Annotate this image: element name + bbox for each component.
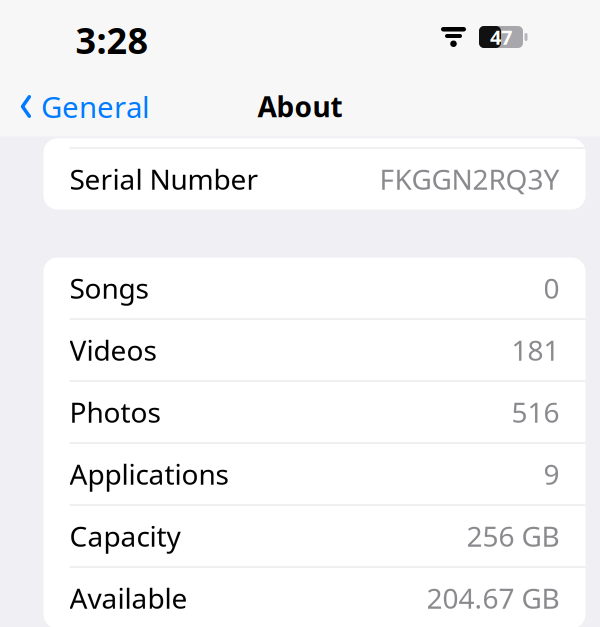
staticText: General (41, 87, 150, 126)
staticText: About (257, 88, 342, 125)
button[interactable]: Applications (43, 443, 585, 504)
staticText: 0 (543, 269, 559, 307)
staticText: 3:28 (75, 16, 148, 64)
staticText: Applications (69, 455, 228, 493)
staticText: Capacity (69, 517, 180, 555)
staticText: 204.67 GB (426, 579, 559, 617)
button[interactable]: Photos (43, 381, 585, 442)
staticText: Available (69, 579, 187, 617)
staticText: 516 (511, 393, 559, 431)
staticText: 47 (490, 24, 512, 50)
staticText: FKGGN2RQ3Y (379, 160, 559, 198)
button[interactable]: Songs (43, 257, 585, 318)
staticText: 256 GB (466, 517, 559, 555)
button[interactable]: Capacity (43, 505, 585, 566)
staticText: Photos (69, 393, 160, 431)
staticText: Videos (69, 331, 156, 369)
button[interactable]: Serial Number (43, 148, 585, 209)
staticText: 181 (511, 331, 559, 369)
button[interactable]: Videos (43, 319, 585, 380)
staticText: Serial Number (69, 160, 258, 198)
button[interactable]: General (0, 77, 150, 136)
staticText: 9 (543, 455, 559, 493)
staticText: Songs (69, 269, 148, 307)
button[interactable]: Available (43, 567, 585, 627)
